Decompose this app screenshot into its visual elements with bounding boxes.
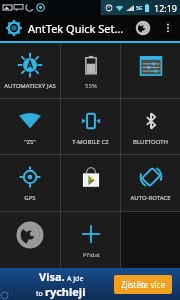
button[interactable]: "ZS": [0, 99, 60, 154]
button[interactable]: AUTO-ROTACE: [121, 155, 180, 211]
staticText: 12:19: [154, 2, 178, 14]
button[interactable]: T-MOBILE CZ: [61, 99, 120, 154]
staticText: BLUETOOTH: [133, 138, 168, 146]
button[interactable]: Zjistěte více: [114, 275, 172, 294]
staticText: AUTO-ROTACE: [130, 194, 171, 202]
staticText: GPS: [24, 194, 36, 202]
staticText: Visa.: [39, 269, 65, 284]
button[interactable]: Theme: [132, 17, 154, 39]
button[interactable]: More options: [160, 17, 176, 39]
button[interactable]: Přidat: [61, 212, 120, 268]
staticText: 5G: [136, 5, 143, 12]
staticText: T-MOBILE CZ: [72, 138, 109, 146]
staticText: 55%: [85, 82, 97, 90]
button[interactable]: GPS: [0, 155, 60, 211]
button[interactable]: Visa.: [0, 268, 180, 300]
staticText: AUTOMATICKÝ JAS: [4, 82, 56, 90]
staticText: rychleji: [45, 284, 86, 299]
staticText: Zjistěte více: [121, 279, 165, 290]
staticText: A jde: [67, 274, 84, 284]
button[interactable]: App icon: [4, 18, 24, 38]
button[interactable]: Tile: [0, 212, 60, 268]
staticText: AntTek Quick Set…: [28, 21, 124, 36]
staticText: to: [36, 289, 45, 299]
staticText: Přidat: [83, 251, 100, 259]
button[interactable]: AUTOMATICKÝ JAS: [0, 43, 60, 98]
button[interactable]: 55%: [61, 43, 120, 98]
button[interactable]: Tile: [121, 43, 180, 98]
staticText: "ZS": [24, 138, 36, 146]
button[interactable]: BLUETOOTH: [121, 99, 180, 154]
button[interactable]: Tile: [61, 155, 120, 211]
